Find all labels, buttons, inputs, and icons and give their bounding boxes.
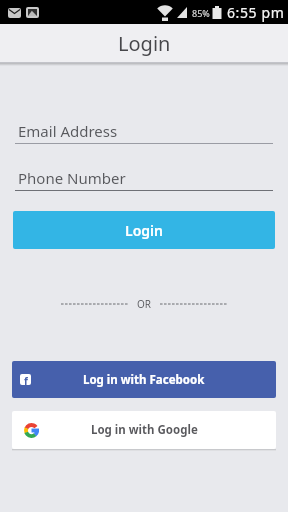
button[interactable]: Log in with Google [12, 411, 276, 449]
button[interactable]: f [12, 361, 276, 398]
staticText: Phone Number [18, 168, 126, 188]
staticText: 85% [192, 7, 210, 19]
staticText: 6:55 pm [227, 3, 285, 22]
button[interactable]: Login [13, 211, 275, 249]
button[interactable]: Email Address [15, 121, 273, 144]
staticText: OR [137, 297, 152, 311]
button[interactable]: Phone Number [15, 168, 273, 191]
staticText: Email Address [18, 121, 118, 141]
staticText: Login [125, 221, 163, 240]
staticText: f [24, 374, 28, 385]
staticText: Log in with Facebook [83, 372, 205, 388]
staticText: Login [118, 30, 171, 57]
staticText: Log in with Google [91, 422, 198, 438]
